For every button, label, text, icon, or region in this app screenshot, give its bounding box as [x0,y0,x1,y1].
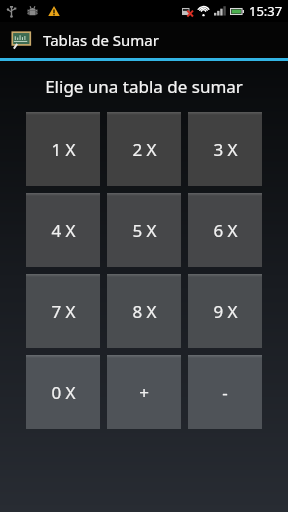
staticText: Elige una tabla de sumar [0,75,288,98]
staticText: 4 X [51,219,76,242]
button[interactable]: 0 X [26,355,100,429]
staticText: 9 X [213,300,238,323]
staticText: 7 X [51,300,76,323]
staticText: 8 X [132,300,157,323]
button[interactable]: 3 X [188,112,262,186]
staticText: 0 X [51,381,76,404]
button[interactable]: 5 X [107,193,181,267]
button[interactable]: 7 X [26,274,100,348]
staticText: 6 X [213,219,238,242]
button[interactable]: 8 X [107,274,181,348]
button[interactable]: 2 X [107,112,181,186]
staticText: 2 X [132,138,157,161]
button[interactable]: 1 X [26,112,100,186]
button[interactable]: 9 X [188,274,262,348]
staticText: 1 X [51,138,76,161]
staticText: Tablas de Sumar [43,30,159,50]
button[interactable]: 4 X [26,193,100,267]
staticText: 5 X [132,219,157,242]
staticText: - [222,381,228,404]
button[interactable]: + [107,355,181,429]
staticText: 15:37 [249,2,283,20]
button[interactable]: 6 X [188,193,262,267]
staticText: 3 X [213,138,238,161]
staticText: + [139,381,149,404]
button[interactable]: - [188,355,262,429]
